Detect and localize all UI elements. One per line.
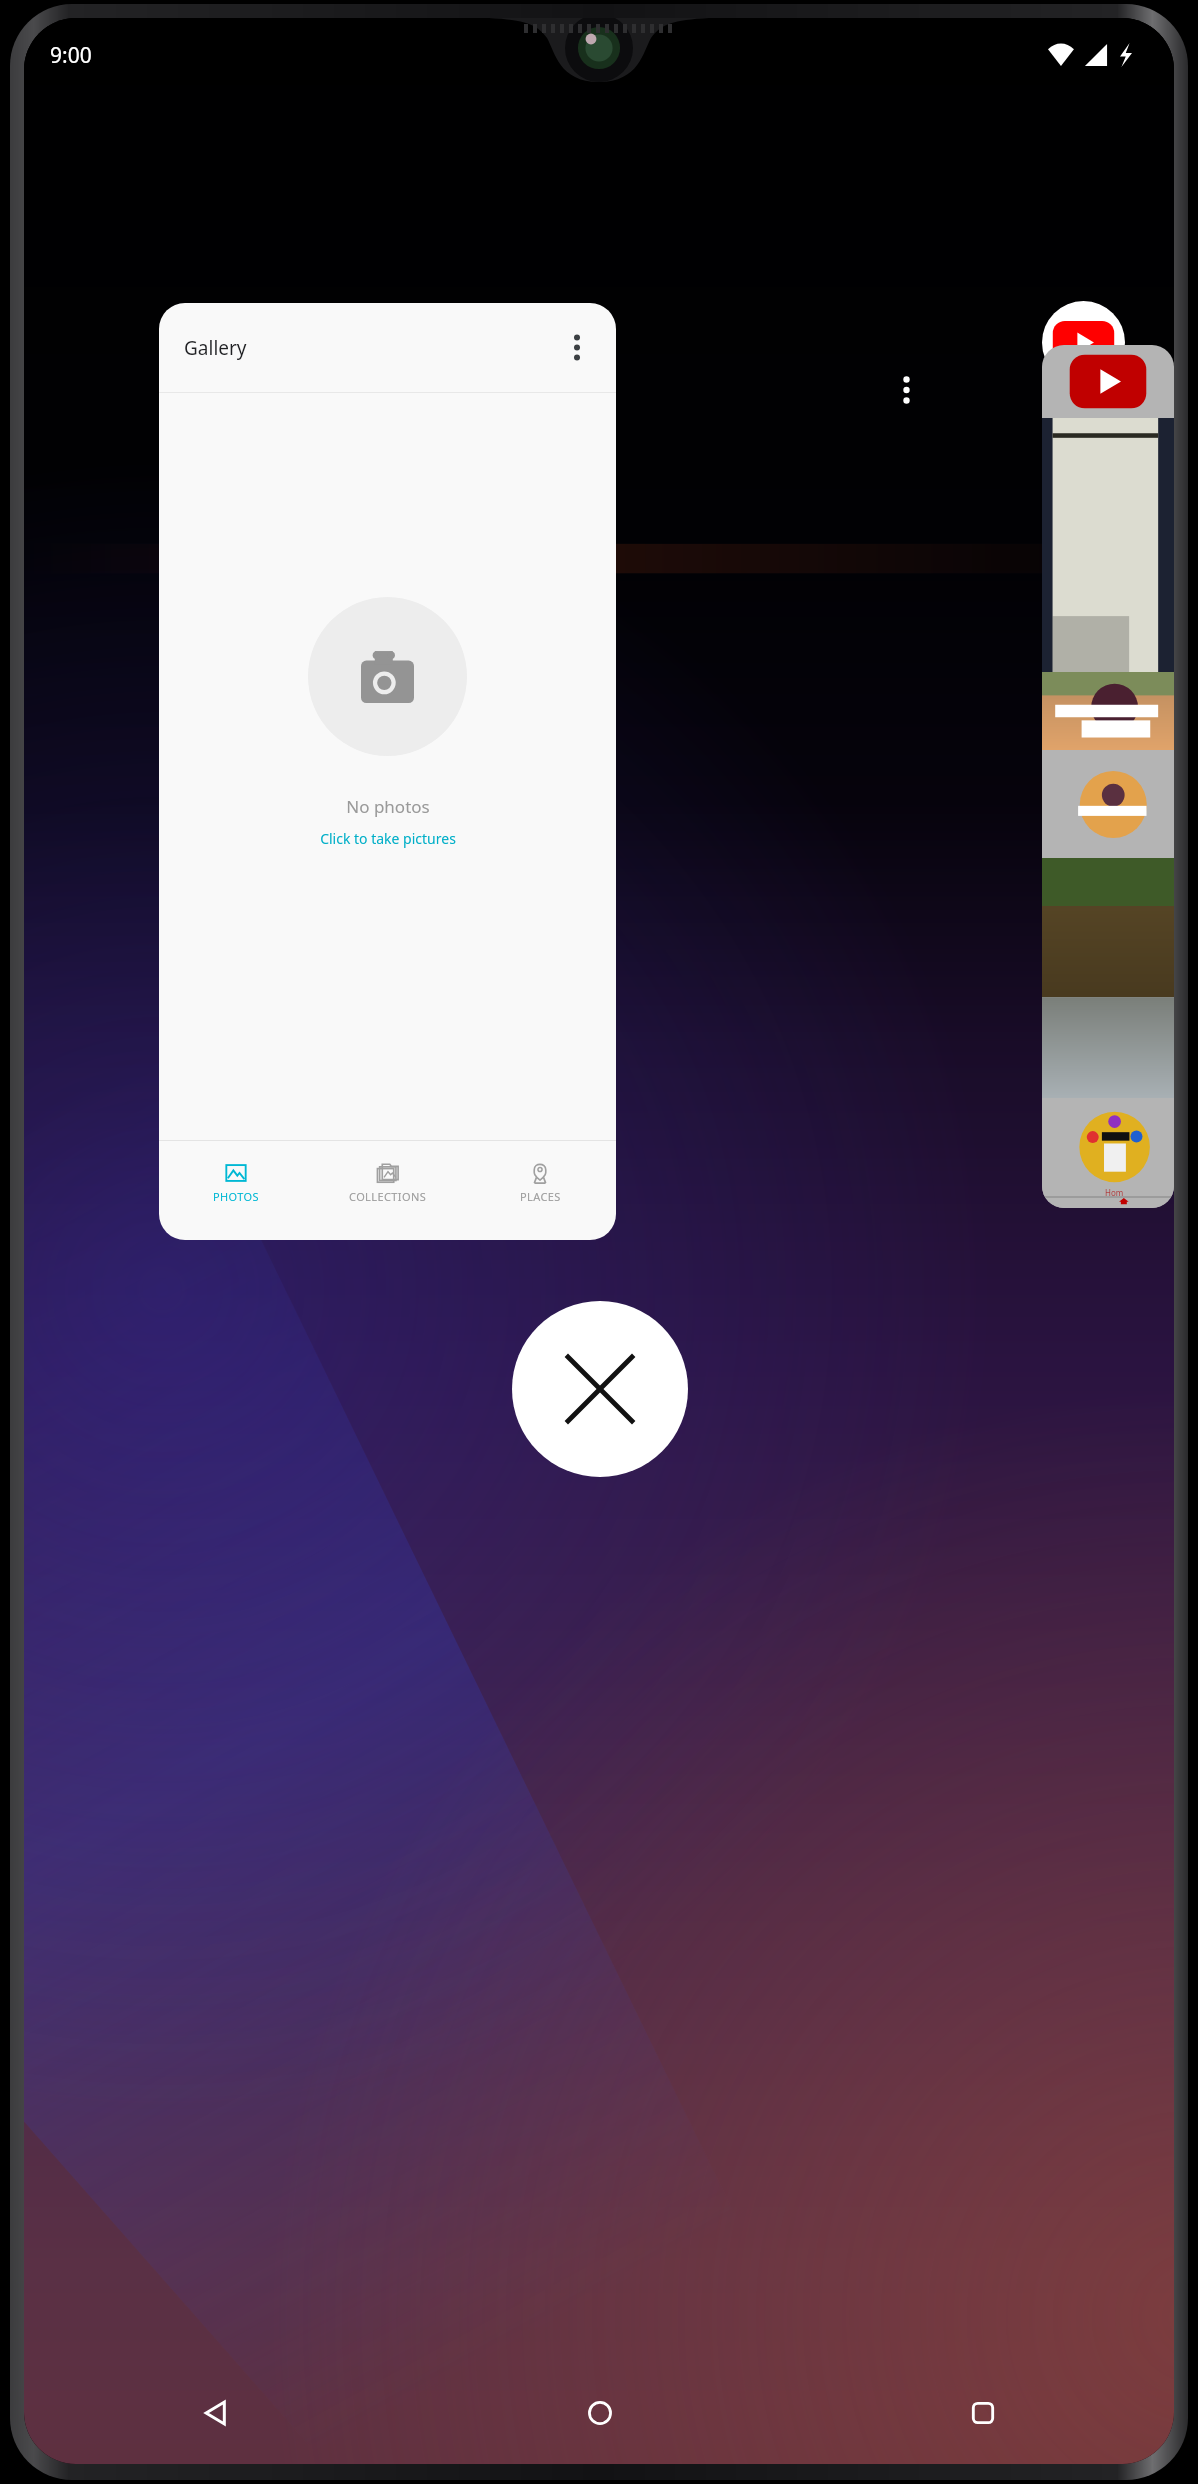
staticText: No photos	[346, 795, 430, 818]
staticText: PHOTOS	[213, 1189, 259, 1204]
button[interactable]: More options	[869, 356, 944, 424]
button[interactable]	[1042, 301, 1125, 384]
button[interactable]: Home	[408, 2380, 791, 2446]
button[interactable]: COLLECTIONS	[312, 1141, 464, 1225]
staticText: COLLECTIONS	[349, 1189, 427, 1204]
staticText: 9:00	[50, 41, 92, 70]
button[interactable]: Clear all recent apps	[512, 1301, 688, 1477]
button[interactable]: PLACES	[464, 1141, 616, 1225]
button[interactable]: Back	[24, 2380, 408, 2446]
button[interactable]: No photos	[159, 393, 616, 1140]
button[interactable]: PHOTOS	[159, 1141, 312, 1225]
button[interactable]: Recent apps	[791, 2380, 1174, 2446]
staticText: Hom	[1105, 1187, 1124, 1198]
button[interactable]: More options	[554, 318, 600, 377]
staticText: Click to take pictures	[320, 829, 456, 848]
button[interactable]: Hom	[1042, 345, 1174, 1208]
button[interactable]: Gallery	[159, 303, 616, 1240]
staticText: PLACES	[520, 1189, 561, 1204]
staticText: Gallery	[184, 335, 247, 361]
